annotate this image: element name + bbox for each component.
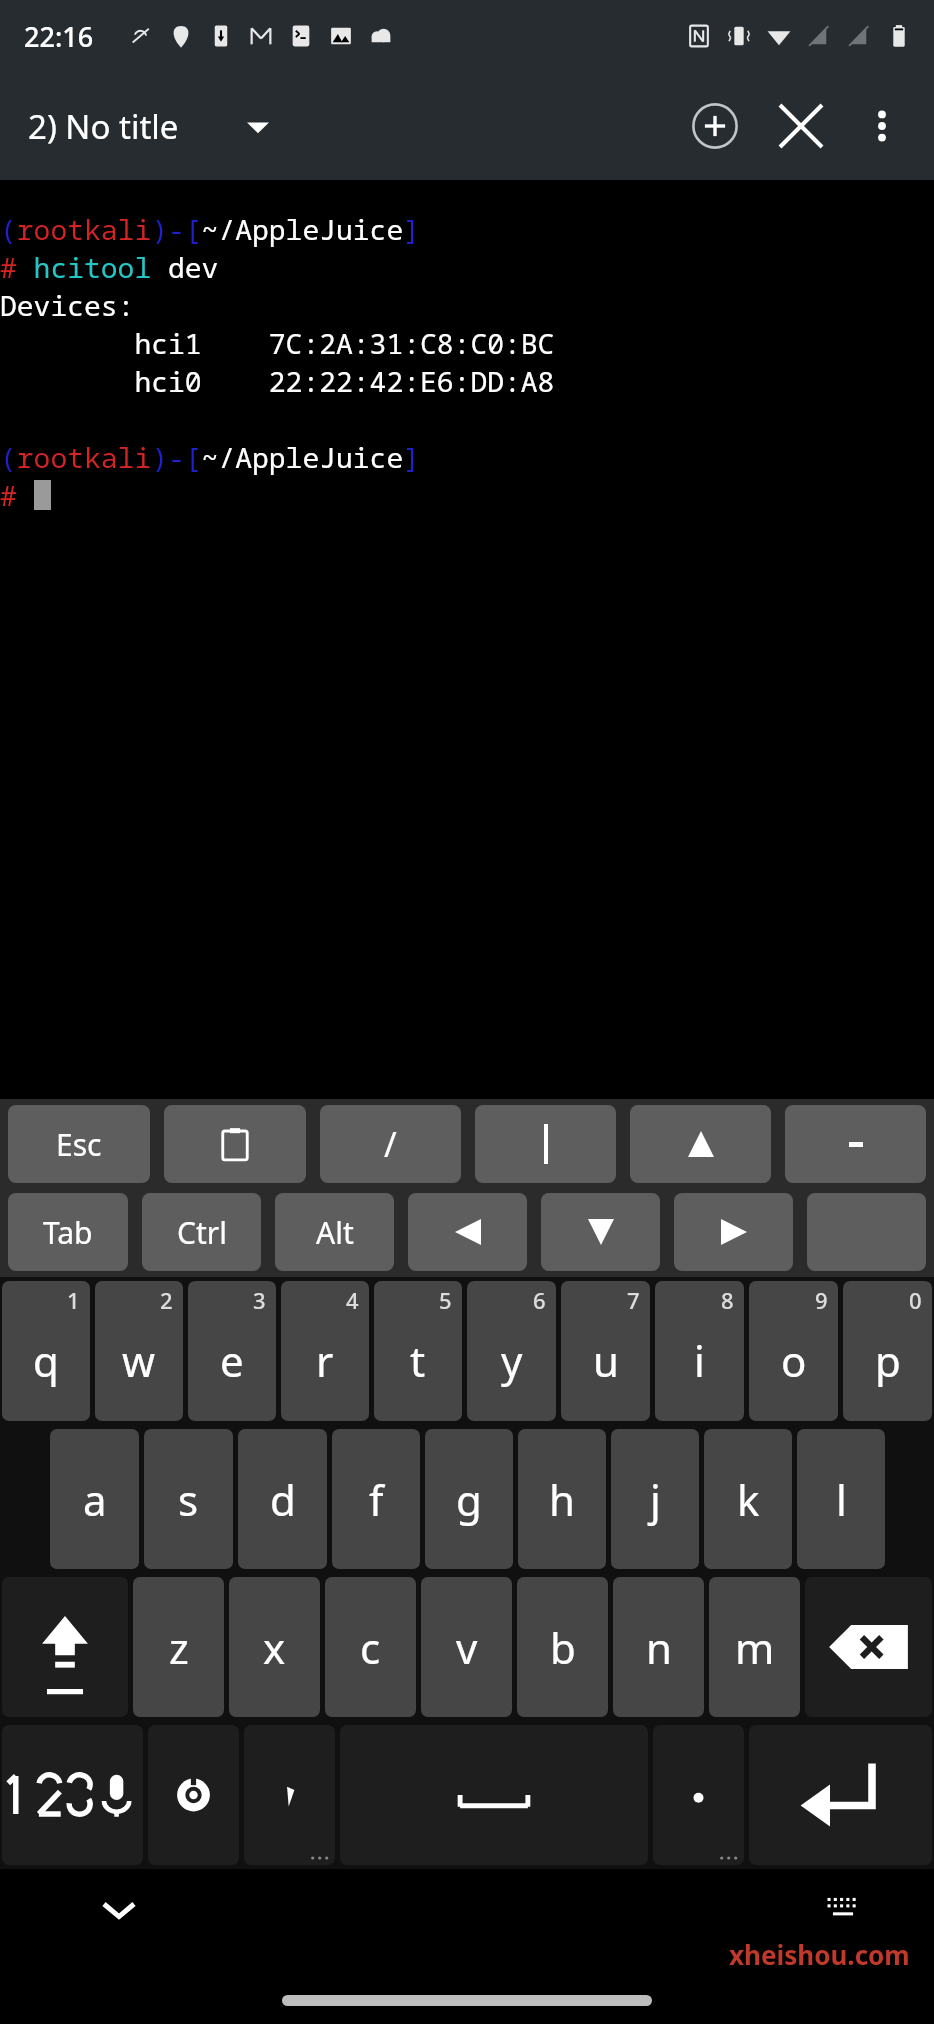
button[interactable]: More options	[844, 88, 920, 164]
button[interactable]: 1	[2, 1281, 90, 1421]
button[interactable]: Change keyboard	[812, 1877, 874, 1939]
button[interactable]	[475, 1105, 616, 1183]
staticText: o	[781, 1332, 807, 1389]
button[interactable]: Hide keyboard	[88, 1879, 150, 1941]
button[interactable]: v	[421, 1577, 512, 1717]
button[interactable]: Enter	[749, 1725, 932, 1865]
staticText: j	[650, 1471, 661, 1528]
button[interactable]: 6	[467, 1281, 556, 1421]
staticText: x	[263, 1619, 286, 1676]
button[interactable]: f	[332, 1429, 420, 1569]
staticText: y	[501, 1332, 523, 1389]
staticText: h	[549, 1471, 575, 1528]
staticText: # hcitool dev	[0, 248, 219, 286]
staticText: a	[83, 1471, 107, 1528]
staticText: 2) No title	[28, 104, 179, 149]
staticText: z	[169, 1619, 189, 1676]
staticText: t	[410, 1332, 426, 1389]
button[interactable]: key	[408, 1193, 527, 1271]
staticText: 2	[160, 1285, 173, 1315]
button[interactable]: key	[164, 1105, 306, 1183]
button[interactable]: Ctrl	[142, 1193, 261, 1271]
button[interactable]: Close session	[758, 83, 844, 169]
staticText: d	[270, 1471, 296, 1528]
button[interactable]: 4	[281, 1281, 369, 1421]
button[interactable]: Shift	[2, 1577, 128, 1717]
staticText: 6	[533, 1285, 546, 1315]
staticText: Ctrl	[177, 1212, 227, 1253]
staticText: f	[369, 1471, 384, 1528]
staticText: s	[178, 1471, 199, 1528]
button[interactable]: key	[674, 1193, 793, 1271]
button[interactable]: d	[238, 1429, 327, 1569]
staticText: i	[694, 1332, 705, 1389]
staticText: Tab	[43, 1212, 93, 1253]
button[interactable]: Comma	[244, 1725, 335, 1865]
button[interactable]: a	[50, 1429, 139, 1569]
button[interactable]: key	[807, 1193, 926, 1271]
staticText: 3	[253, 1285, 266, 1315]
staticText: m	[735, 1619, 775, 1676]
button[interactable]: k	[704, 1429, 792, 1569]
staticText: w	[122, 1332, 156, 1389]
button[interactable]: Backspace	[805, 1577, 932, 1717]
button[interactable]: Period	[653, 1725, 744, 1865]
staticText: c	[360, 1619, 381, 1676]
button[interactable]: h	[518, 1429, 606, 1569]
button[interactable]: g	[425, 1429, 513, 1569]
button[interactable]: Emoji	[148, 1725, 239, 1865]
staticText: q	[33, 1332, 59, 1389]
button[interactable]: Alt	[275, 1193, 394, 1271]
staticText: r	[316, 1332, 334, 1389]
button[interactable]: l	[797, 1429, 885, 1569]
staticText: hci0 22:22:42:E6:DD:A8	[0, 362, 555, 400]
button[interactable]: s	[144, 1429, 233, 1569]
staticText: b	[550, 1619, 576, 1676]
button[interactable]: 8	[655, 1281, 744, 1421]
button[interactable]: 2	[95, 1281, 183, 1421]
staticText: 1	[67, 1285, 80, 1315]
button[interactable]: j	[611, 1429, 699, 1569]
staticText: 0	[909, 1285, 922, 1315]
button[interactable]: Esc	[8, 1105, 150, 1183]
button[interactable]: key	[541, 1193, 660, 1271]
button[interactable]: z	[133, 1577, 224, 1717]
staticText: v	[456, 1619, 478, 1676]
staticText: u	[593, 1332, 619, 1389]
staticText: 5	[439, 1285, 452, 1315]
staticText: (rootkali)-[~/AppleJuice]	[0, 210, 421, 248]
button[interactable]: 9	[749, 1281, 838, 1421]
staticText: Devices:	[0, 286, 135, 324]
button[interactable]: Space	[340, 1725, 648, 1865]
button[interactable]: x	[229, 1577, 320, 1717]
button[interactable]: /	[320, 1105, 461, 1183]
staticText: p	[875, 1332, 901, 1389]
button[interactable]: key	[630, 1105, 771, 1183]
staticText: 8	[721, 1285, 734, 1315]
staticText: xheishou.com	[729, 1937, 910, 1972]
staticText: (rootkali)-[~/AppleJuice]	[0, 438, 421, 476]
button[interactable]: m	[709, 1577, 800, 1717]
button[interactable]: 5	[374, 1281, 462, 1421]
staticText: 7	[627, 1285, 640, 1315]
staticText: n	[646, 1619, 672, 1676]
button[interactable]	[785, 1105, 926, 1183]
button[interactable]: c	[325, 1577, 416, 1717]
staticText: hci1 7C:2A:31:C8:C0:BC	[0, 324, 555, 362]
button[interactable]: Tab	[8, 1193, 128, 1271]
button[interactable]: 7	[561, 1281, 650, 1421]
staticText: e	[220, 1332, 244, 1389]
button[interactable]: Symbols and voice input	[2, 1725, 143, 1865]
staticText: Esc	[56, 1124, 102, 1165]
button[interactable]: 3	[188, 1281, 276, 1421]
staticText: 4	[346, 1285, 359, 1315]
staticText: k	[737, 1471, 760, 1528]
button[interactable]: New session	[672, 83, 758, 169]
button[interactable]: 2) No title	[22, 98, 275, 155]
button[interactable]: n	[613, 1577, 704, 1717]
staticText: l	[836, 1471, 847, 1528]
button[interactable]: 0	[843, 1281, 932, 1421]
button[interactable]: b	[517, 1577, 608, 1717]
staticText: #	[0, 476, 34, 514]
